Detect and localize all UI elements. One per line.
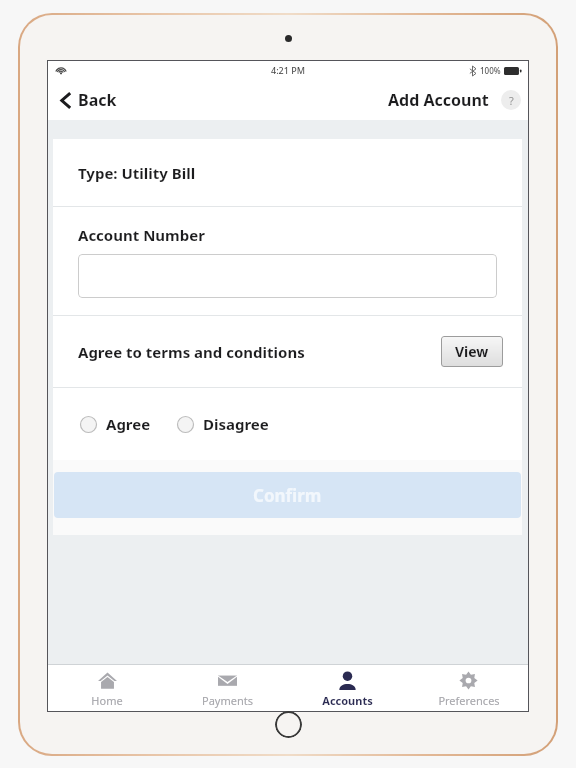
button[interactable]: Confirm — [54, 472, 521, 518]
button[interactable]: Help — [501, 90, 521, 110]
button[interactable]: Accounts — [287, 665, 408, 712]
button[interactable]: Home — [47, 665, 167, 712]
button[interactable]: Type: Utility Bill — [53, 139, 522, 206]
staticText: Type: Utility Bill — [78, 163, 196, 183]
button[interactable]: Add Account — [386, 85, 491, 115]
staticText: Agree to terms and conditions — [78, 342, 441, 362]
staticText: 100% — [480, 65, 501, 76]
button[interactable]: Preferences — [408, 665, 529, 712]
button[interactable]: Agree — [78, 410, 153, 438]
staticText: Agree — [106, 414, 151, 434]
staticText: Confirm — [253, 484, 322, 507]
button[interactable]: Disagree — [175, 410, 271, 438]
button[interactable]: View — [441, 336, 503, 367]
staticText: Payments — [202, 693, 253, 708]
staticText: ? — [509, 93, 514, 108]
staticText: View — [455, 342, 489, 361]
staticText: 4:21 PM — [271, 64, 305, 76]
staticText: Account Number — [78, 225, 205, 245]
staticText: Disagree — [203, 414, 269, 434]
staticText: Back — [78, 89, 117, 111]
staticText: Home — [91, 693, 123, 708]
button[interactable]: Payments — [167, 665, 287, 712]
staticText: Accounts — [322, 693, 373, 708]
staticText: Preferences — [438, 693, 500, 708]
button[interactable]: Back — [55, 85, 123, 115]
button[interactable] — [78, 254, 497, 298]
